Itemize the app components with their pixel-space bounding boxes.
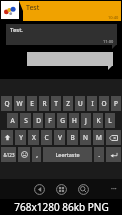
staticText: N	[83, 133, 88, 142]
button[interactable]: Enter	[106, 147, 121, 162]
button[interactable]: Backspace	[106, 130, 121, 145]
staticText: T	[54, 99, 58, 108]
staticText: E	[30, 99, 34, 108]
staticText: &123	[3, 152, 15, 158]
staticText: G	[60, 116, 65, 125]
button[interactable]: .	[94, 147, 104, 162]
staticText: M	[96, 133, 102, 142]
button[interactable]: H	[69, 113, 79, 128]
button[interactable]: O	[99, 96, 109, 111]
button[interactable]: ,	[32, 147, 41, 162]
button[interactable]: Y	[15, 130, 26, 145]
staticText: K	[96, 116, 101, 125]
button[interactable]: B	[67, 130, 78, 145]
button[interactable]: Leertaste	[43, 147, 92, 162]
staticText: •••	[111, 186, 117, 193]
staticText: L	[108, 116, 112, 125]
button[interactable]: Shift	[1, 130, 13, 145]
button[interactable]: U	[75, 96, 85, 111]
button[interactable]: I	[87, 96, 97, 111]
button[interactable]: Emoji	[18, 147, 30, 162]
button[interactable]: Z	[63, 96, 73, 111]
button[interactable]: G	[57, 113, 67, 128]
staticText: C	[44, 133, 49, 142]
staticText: 10:40	[108, 15, 119, 20]
button[interactable]: K	[93, 113, 103, 128]
staticText: F	[48, 116, 52, 125]
staticText: .	[98, 150, 100, 159]
staticText: S	[24, 116, 28, 125]
button[interactable]: C	[41, 130, 52, 145]
staticText: R	[42, 99, 47, 108]
staticText: V	[58, 133, 62, 142]
button[interactable]: N	[80, 130, 91, 145]
button[interactable]: F	[45, 113, 55, 128]
button[interactable]: T	[51, 96, 61, 111]
staticText: Leertaste	[55, 151, 80, 158]
staticText: 768x1280 86kb PNG	[14, 200, 109, 214]
staticText: 11:00	[103, 39, 114, 44]
staticText: ,	[36, 150, 38, 159]
staticText: Test.	[10, 26, 23, 34]
staticText: J	[85, 116, 87, 125]
staticText: Y	[19, 133, 23, 142]
button[interactable]: Back	[33, 183, 46, 196]
button[interactable]: Home	[55, 183, 68, 196]
staticText: D	[36, 116, 41, 125]
staticText: U	[78, 99, 83, 108]
button[interactable]: Contact picture	[1, 1, 19, 19]
button[interactable]: P	[111, 96, 121, 111]
button[interactable]: &123	[1, 147, 16, 162]
button[interactable]: W	[14, 96, 25, 111]
staticText: Test	[26, 3, 40, 13]
staticText: H	[72, 116, 77, 125]
button[interactable]: Test	[23, 1, 121, 21]
button[interactable]: S	[20, 113, 31, 128]
button[interactable]: J	[81, 113, 91, 128]
staticText: W	[16, 99, 23, 108]
button[interactable]: A	[7, 113, 18, 128]
button[interactable]: R	[39, 96, 49, 111]
button[interactable]: X	[28, 130, 39, 145]
staticText: P	[114, 99, 118, 108]
staticText: A	[10, 116, 15, 125]
staticText: B	[70, 133, 75, 142]
staticText: X	[32, 133, 36, 142]
button[interactable]: E	[27, 96, 37, 111]
staticText: Q	[4, 99, 10, 108]
staticText: I	[91, 99, 94, 108]
staticText: Z	[66, 99, 70, 108]
button[interactable]: D	[33, 113, 43, 128]
button[interactable]: Search	[77, 183, 90, 196]
button[interactable]: V	[54, 130, 65, 145]
staticText: O	[101, 99, 107, 108]
button[interactable]: L	[105, 113, 115, 128]
button[interactable]: Test.	[6, 24, 117, 45]
button[interactable]: Q	[1, 96, 12, 111]
button[interactable]: M	[93, 130, 104, 145]
